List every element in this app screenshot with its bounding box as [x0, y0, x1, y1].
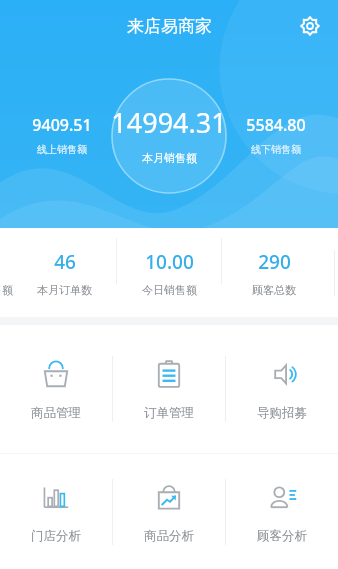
- staticText: 线下销售额: [251, 143, 301, 156]
- button[interactable]: 290: [222, 238, 326, 308]
- staticText: 订单管理: [144, 405, 194, 421]
- button[interactable]: 10.00: [117, 238, 221, 308]
- button[interactable]: 9409.51: [14, 114, 110, 156]
- staticText: 9409.51: [32, 114, 92, 136]
- button[interactable]: 5584.80: [228, 114, 324, 156]
- staticText: 本月销售额: [142, 151, 197, 165]
- button[interactable]: 订单管理: [113, 325, 225, 453]
- staticText: 导购招募: [257, 405, 307, 421]
- staticText: 46: [54, 249, 76, 275]
- button[interactable]: 14994.31: [111, 78, 227, 194]
- staticText: 今日销售额: [142, 283, 197, 297]
- button[interactable]: 8.5: [0, 249, 22, 297]
- button[interactable]: 顾客分析: [226, 454, 338, 569]
- staticText: 来店易商家: [127, 16, 212, 37]
- button[interactable]: Settings: [292, 8, 328, 44]
- staticText: 线上销售额: [37, 143, 87, 156]
- staticText: 门店分析: [31, 528, 81, 544]
- staticText: 商品管理: [31, 405, 81, 421]
- staticText: 昨日销售额: [0, 283, 13, 297]
- staticText: 10.00: [145, 249, 194, 275]
- staticText: 顾客分析: [257, 528, 307, 544]
- button[interactable]: 导购招募: [226, 325, 338, 453]
- staticText: 商品分析: [144, 528, 194, 544]
- button[interactable]: 46: [12, 238, 116, 308]
- button[interactable]: 商品分析: [113, 454, 225, 569]
- staticText: 顾客总数: [252, 283, 296, 297]
- staticText: 本月订单数: [37, 283, 92, 297]
- button[interactable]: 门店分析: [0, 454, 112, 569]
- staticText: 5584.80: [246, 114, 306, 136]
- staticText: 290: [258, 249, 291, 275]
- button[interactable]: 商品管理: [0, 325, 112, 453]
- staticText: 14994.31: [111, 104, 227, 141]
